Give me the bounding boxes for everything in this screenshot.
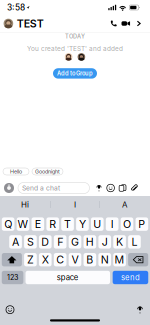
staticText: space	[57, 273, 79, 282]
button[interactable]: Stickers	[107, 184, 114, 192]
staticText: TODAY	[65, 33, 85, 40]
staticText: R	[49, 218, 56, 230]
staticText: A	[12, 235, 19, 248]
button[interactable]: Send a chat	[18, 182, 89, 193]
button[interactable]: K	[113, 235, 126, 249]
button[interactable]: A	[9, 235, 22, 249]
button[interactable]: T	[61, 217, 74, 231]
button[interactable]: D	[39, 235, 52, 249]
button[interactable]: 123	[2, 271, 23, 284]
button[interactable]: Q	[2, 217, 14, 231]
button[interactable]: Goodnight	[32, 168, 63, 175]
staticText: V	[71, 253, 78, 266]
button[interactable]: More	[133, 20, 144, 27]
button[interactable]: B	[83, 253, 96, 266]
staticText: D	[41, 235, 49, 248]
staticText: TEST	[17, 17, 44, 30]
button[interactable]: S	[24, 235, 37, 249]
staticText: Hello	[10, 168, 22, 175]
staticText: A	[122, 200, 128, 209]
staticText: F	[57, 235, 63, 248]
staticText: J	[102, 235, 108, 248]
staticText: B	[86, 253, 93, 266]
button[interactable]: Add to Group	[53, 68, 97, 79]
button[interactable]: F	[54, 235, 66, 249]
button[interactable]: space	[26, 271, 110, 284]
staticText: S	[27, 235, 34, 248]
staticText: Z	[27, 253, 34, 266]
staticText: I	[111, 218, 114, 230]
button[interactable]: J	[98, 235, 111, 249]
staticText: 3:58	[7, 2, 25, 12]
button[interactable]: O	[121, 217, 133, 231]
staticText: Send a chat	[22, 184, 60, 192]
button[interactable]: V	[69, 253, 81, 266]
button[interactable]: send	[113, 271, 148, 284]
staticText: Hi	[21, 200, 29, 209]
button[interactable]: Delete	[128, 253, 148, 266]
button[interactable]: H	[83, 235, 96, 249]
staticText: X	[42, 253, 49, 266]
staticText: G	[71, 235, 79, 248]
button[interactable]: E	[31, 217, 44, 231]
button[interactable]: U	[91, 217, 104, 231]
button[interactable]: Hello	[3, 168, 29, 175]
staticText: Q	[4, 218, 12, 230]
staticText: H	[86, 235, 94, 248]
staticText: E	[35, 218, 41, 230]
staticText: O	[123, 218, 131, 230]
button[interactable]: Y	[76, 217, 89, 231]
staticText: C	[56, 253, 64, 266]
staticText: I	[74, 200, 76, 209]
button[interactable]: C	[54, 253, 66, 266]
button[interactable]: Dictation	[136, 306, 150, 314]
staticText: U	[93, 218, 101, 230]
button[interactable]: X	[39, 253, 52, 266]
staticText: Add to Group	[57, 70, 93, 77]
button[interactable]: I	[106, 217, 118, 231]
button[interactable]: N	[98, 253, 111, 266]
staticText: Goodnight	[35, 168, 60, 175]
button[interactable]: TEST	[0, 15, 48, 32]
button[interactable]: R	[46, 217, 59, 231]
staticText: W	[17, 218, 28, 230]
button[interactable]: M	[113, 253, 126, 266]
staticText: send	[121, 273, 140, 282]
staticText: N	[101, 253, 109, 266]
button[interactable]: Photos	[119, 184, 126, 192]
button[interactable]: A	[100, 196, 150, 213]
staticText: 123	[7, 273, 18, 282]
staticText: K	[116, 235, 123, 248]
staticText: L	[131, 235, 137, 248]
staticText: M	[115, 253, 125, 266]
button[interactable]: Hi	[0, 196, 50, 213]
button[interactable]: Camera	[0, 183, 18, 193]
button[interactable]: Voice message	[95, 184, 103, 192]
button[interactable]: GIF	[130, 184, 138, 192]
button[interactable]: L	[128, 235, 141, 249]
button[interactable]: Video call	[119, 19, 133, 28]
button[interactable]: I	[50, 196, 99, 213]
button[interactable]: Emoji keyboard	[0, 306, 14, 314]
button[interactable]: Audio call	[108, 20, 119, 27]
button[interactable]: P	[135, 217, 148, 231]
staticText: You created 'TEST' and added	[27, 45, 123, 53]
button[interactable]: Z	[24, 253, 37, 266]
staticText: Y	[79, 218, 86, 230]
button[interactable]: W	[17, 217, 29, 231]
button[interactable]: Shift	[2, 253, 22, 266]
staticText: P	[138, 218, 145, 230]
button[interactable]: G	[69, 235, 81, 249]
staticText: T	[64, 218, 71, 230]
